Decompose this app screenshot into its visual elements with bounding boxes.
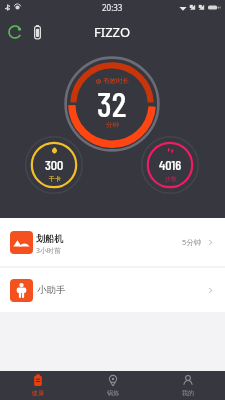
staticText: 划船机 — [36, 233, 63, 244]
staticText: FIZZO — [94, 23, 131, 41]
staticText: 步数 — [165, 175, 177, 183]
staticText: 300 — [45, 156, 64, 173]
button[interactable]: Connection status — [4, 21, 26, 43]
staticText: 20:33 — [102, 2, 123, 13]
staticText: 锅炼 — [107, 389, 119, 397]
button[interactable]: 健康 — [0, 371, 75, 400]
staticText: 千卡 — [49, 175, 61, 183]
staticText: 我的 — [182, 389, 194, 397]
staticText: 有效时长 — [103, 77, 129, 85]
button[interactable]: 我的 — [150, 371, 225, 400]
button[interactable]: 划船机 — [0, 218, 225, 266]
staticText: 3小时前 — [36, 246, 62, 256]
button[interactable]: 小助手 — [0, 268, 225, 312]
staticText: 小助手 — [37, 284, 66, 296]
staticText: 32 — [97, 82, 127, 124]
staticText: 5分钟 — [182, 237, 202, 247]
button[interactable]: Device battery — [26, 21, 48, 43]
staticText: 4016 — [159, 156, 182, 173]
staticText: 分钟 — [106, 121, 119, 129]
staticText: 健康 — [32, 389, 44, 397]
button[interactable]: 锅炼 — [75, 371, 150, 400]
